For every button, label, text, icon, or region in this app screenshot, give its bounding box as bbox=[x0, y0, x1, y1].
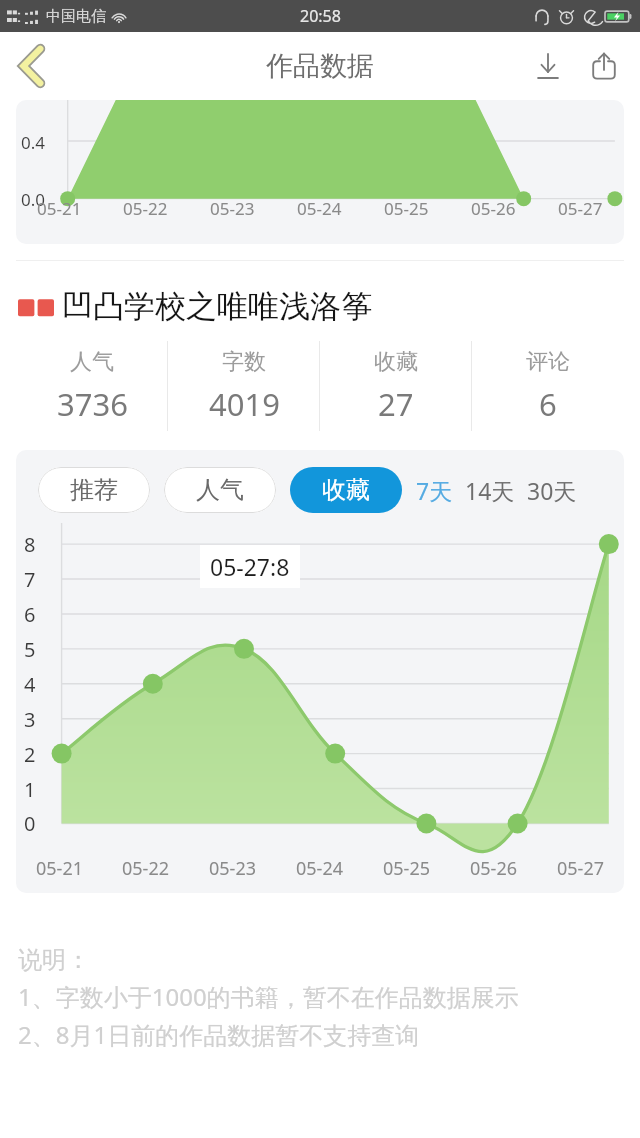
staticText: 2 bbox=[24, 741, 36, 768]
staticText: 2、8月1日前的作品数据暂不支持查询 bbox=[18, 1018, 420, 1051]
button[interactable]: 收藏 bbox=[290, 467, 402, 513]
button[interactable]: 评论 bbox=[472, 338, 624, 434]
staticText: 05-22 bbox=[122, 856, 169, 881]
button[interactable]: 人气 bbox=[164, 467, 276, 513]
staticText: 收藏 bbox=[322, 475, 370, 505]
button[interactable]: 收藏 bbox=[320, 338, 472, 434]
staticText: 05-23 bbox=[209, 856, 256, 881]
button[interactable]: Download bbox=[520, 38, 576, 94]
button[interactable]: 30天 bbox=[527, 475, 577, 506]
staticText: 20:58 bbox=[300, 5, 341, 27]
staticText: 6 bbox=[24, 601, 36, 628]
button[interactable]: 凹凸学校之唯唯浅洛筝 bbox=[18, 287, 640, 326]
staticText: 收藏 bbox=[374, 348, 418, 376]
staticText: 说明： bbox=[18, 945, 90, 975]
staticText: 05-27 bbox=[557, 856, 604, 881]
staticText: 05-27 bbox=[558, 197, 603, 220]
staticText: 4019 bbox=[209, 383, 280, 425]
staticText: 0.0 bbox=[21, 188, 46, 211]
staticText: 6 bbox=[539, 383, 557, 425]
staticText: 0.4 bbox=[21, 131, 46, 154]
staticText: 作品数据 bbox=[266, 49, 374, 83]
staticText: 05-24 bbox=[296, 856, 343, 881]
staticText: 推荐 bbox=[70, 475, 118, 505]
staticText: 05-21 bbox=[36, 856, 83, 881]
staticText: 3 bbox=[24, 706, 36, 733]
button[interactable]: 人气 bbox=[16, 338, 168, 434]
button[interactable]: Share bbox=[576, 38, 632, 94]
staticText: 1 bbox=[24, 776, 36, 803]
staticText: 3736 bbox=[57, 383, 128, 425]
staticText: 05-26 bbox=[470, 856, 517, 881]
staticText: 1、字数小于1000的书籍，暂不在作品数据展示 bbox=[18, 980, 519, 1013]
staticText: 27 bbox=[378, 383, 414, 425]
staticText: 05-22 bbox=[123, 197, 168, 220]
button[interactable]: 14天 bbox=[465, 475, 515, 506]
staticText: 05-23 bbox=[210, 197, 255, 220]
staticText: 05-26 bbox=[471, 197, 516, 220]
staticText: 05-21 bbox=[37, 197, 82, 220]
staticText: 人气 bbox=[70, 348, 114, 376]
button[interactable]: 字数 bbox=[168, 338, 320, 434]
staticText: 人气 bbox=[196, 475, 244, 505]
staticText: 7 bbox=[24, 566, 36, 593]
staticText: 字数 bbox=[222, 348, 266, 376]
staticText: 05-25 bbox=[383, 856, 430, 881]
staticText: 5 bbox=[24, 636, 36, 663]
staticText: 05-25 bbox=[384, 197, 429, 220]
button[interactable]: Back bbox=[0, 34, 64, 98]
staticText: 8 bbox=[24, 531, 36, 558]
staticText: 05-24 bbox=[297, 197, 342, 220]
staticText: 4 bbox=[24, 671, 36, 698]
staticText: 05-27:8 bbox=[210, 551, 290, 582]
staticText: 中国电信 bbox=[46, 7, 106, 26]
staticText: 评论 bbox=[526, 348, 570, 376]
staticText: 凹凸学校之唯唯浅洛筝 bbox=[62, 287, 372, 326]
staticText: 0 bbox=[24, 810, 36, 837]
button[interactable]: 7天 bbox=[416, 475, 453, 506]
button[interactable]: 推荐 bbox=[38, 467, 150, 513]
